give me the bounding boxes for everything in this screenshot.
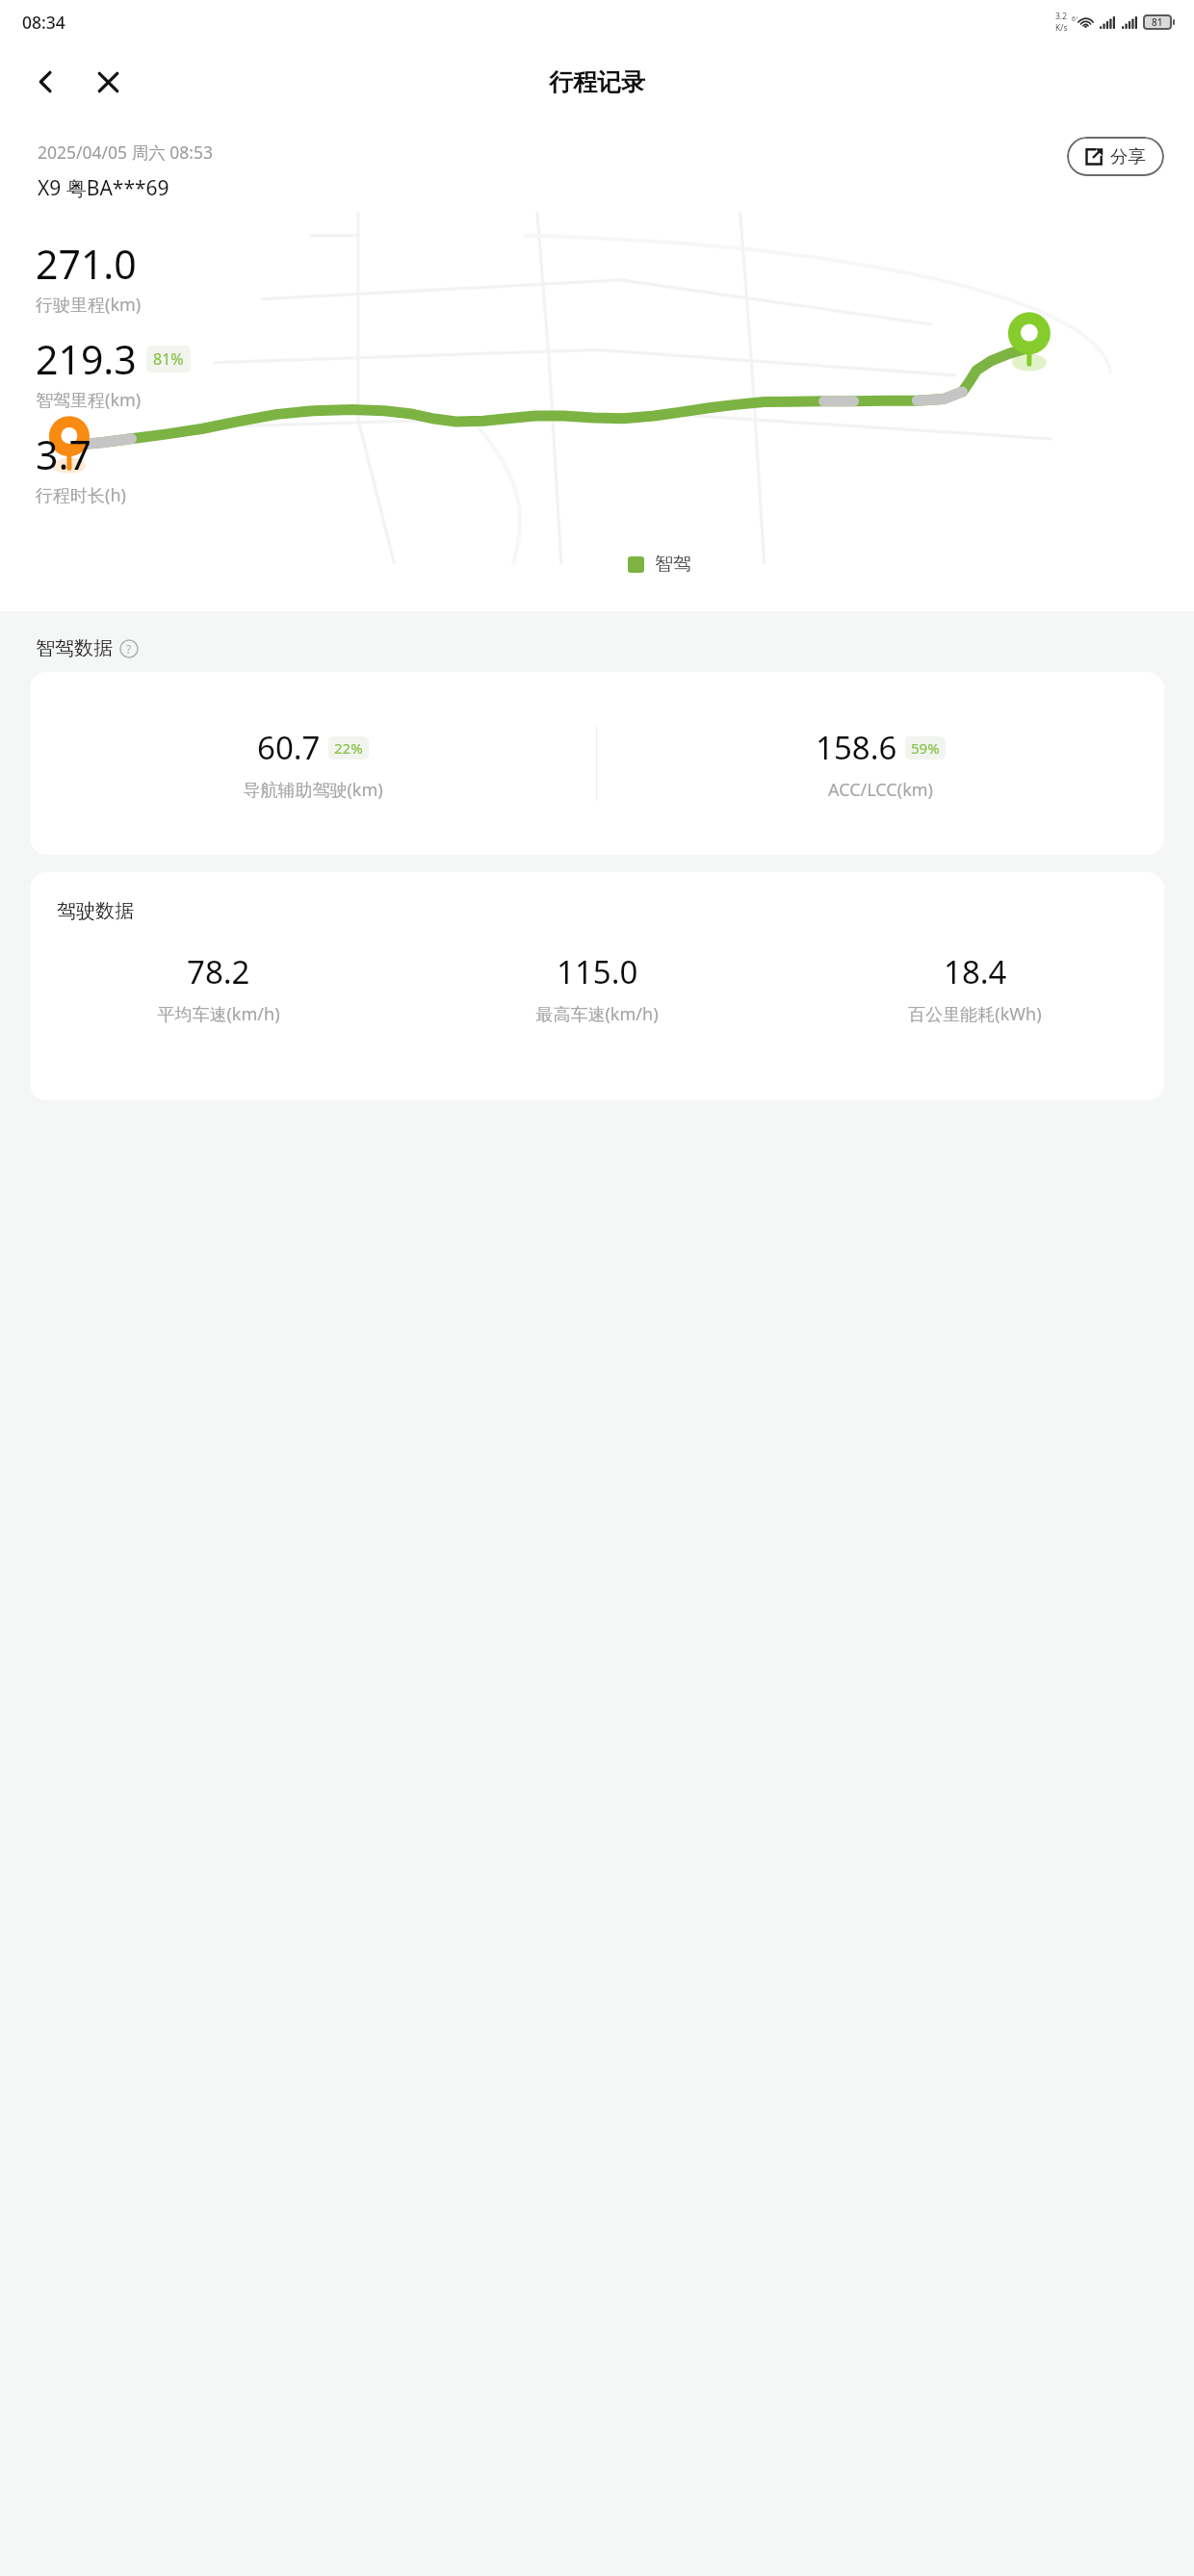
- staticText: ?: [126, 641, 132, 657]
- staticText: 驾驶数据: [57, 899, 134, 923]
- staticText: 3.2: [1055, 11, 1068, 22]
- staticText: 115.0: [557, 950, 638, 993]
- button[interactable]: Close: [81, 55, 135, 109]
- staticText: K/s: [1055, 22, 1068, 34]
- staticText: 分享: [1110, 145, 1146, 167]
- staticText: 08:34: [22, 11, 65, 34]
- staticText: 导航辅助驾驶(km): [243, 778, 383, 802]
- staticText: 18.4: [944, 950, 1007, 993]
- staticText: 22%: [334, 738, 363, 758]
- staticText: 平均车速(km/h): [157, 1002, 280, 1026]
- button[interactable]: Back: [19, 55, 73, 109]
- staticText: 59%: [911, 738, 940, 758]
- staticText: 最高车速(km/h): [535, 1002, 659, 1026]
- staticText: 81: [1152, 15, 1163, 29]
- button[interactable]: 智驾数据说明: [119, 639, 139, 658]
- button[interactable]: 分享: [1067, 137, 1164, 176]
- staticText: 3.7: [36, 427, 91, 481]
- staticText: 78.2: [187, 950, 250, 993]
- staticText: 271.0: [36, 237, 137, 291]
- staticText: ACC/LCC(km): [828, 778, 933, 802]
- staticText: 智驾里程(km): [36, 388, 142, 412]
- staticText: 百公里能耗(kWh): [908, 1002, 1042, 1026]
- staticText: 智驾数据: [36, 636, 113, 660]
- staticText: 行程时长(h): [36, 483, 126, 507]
- staticText: 智驾: [655, 553, 691, 576]
- staticText: 2025/04/05 周六 08:53: [38, 141, 213, 164]
- staticText: 60.7: [257, 726, 321, 769]
- staticText: 81%: [153, 348, 184, 370]
- staticText: X9 粤BA***69: [38, 174, 169, 202]
- staticText: 行程记录: [549, 67, 645, 97]
- button[interactable]: 60.7: [30, 672, 1164, 855]
- staticText: 6⁺: [1072, 14, 1078, 24]
- staticText: 219.3: [36, 332, 137, 386]
- staticText: 158.6: [816, 726, 897, 769]
- button[interactable]: 驾驶数据: [30, 872, 1164, 1100]
- staticText: 行驶里程(km): [36, 293, 142, 317]
